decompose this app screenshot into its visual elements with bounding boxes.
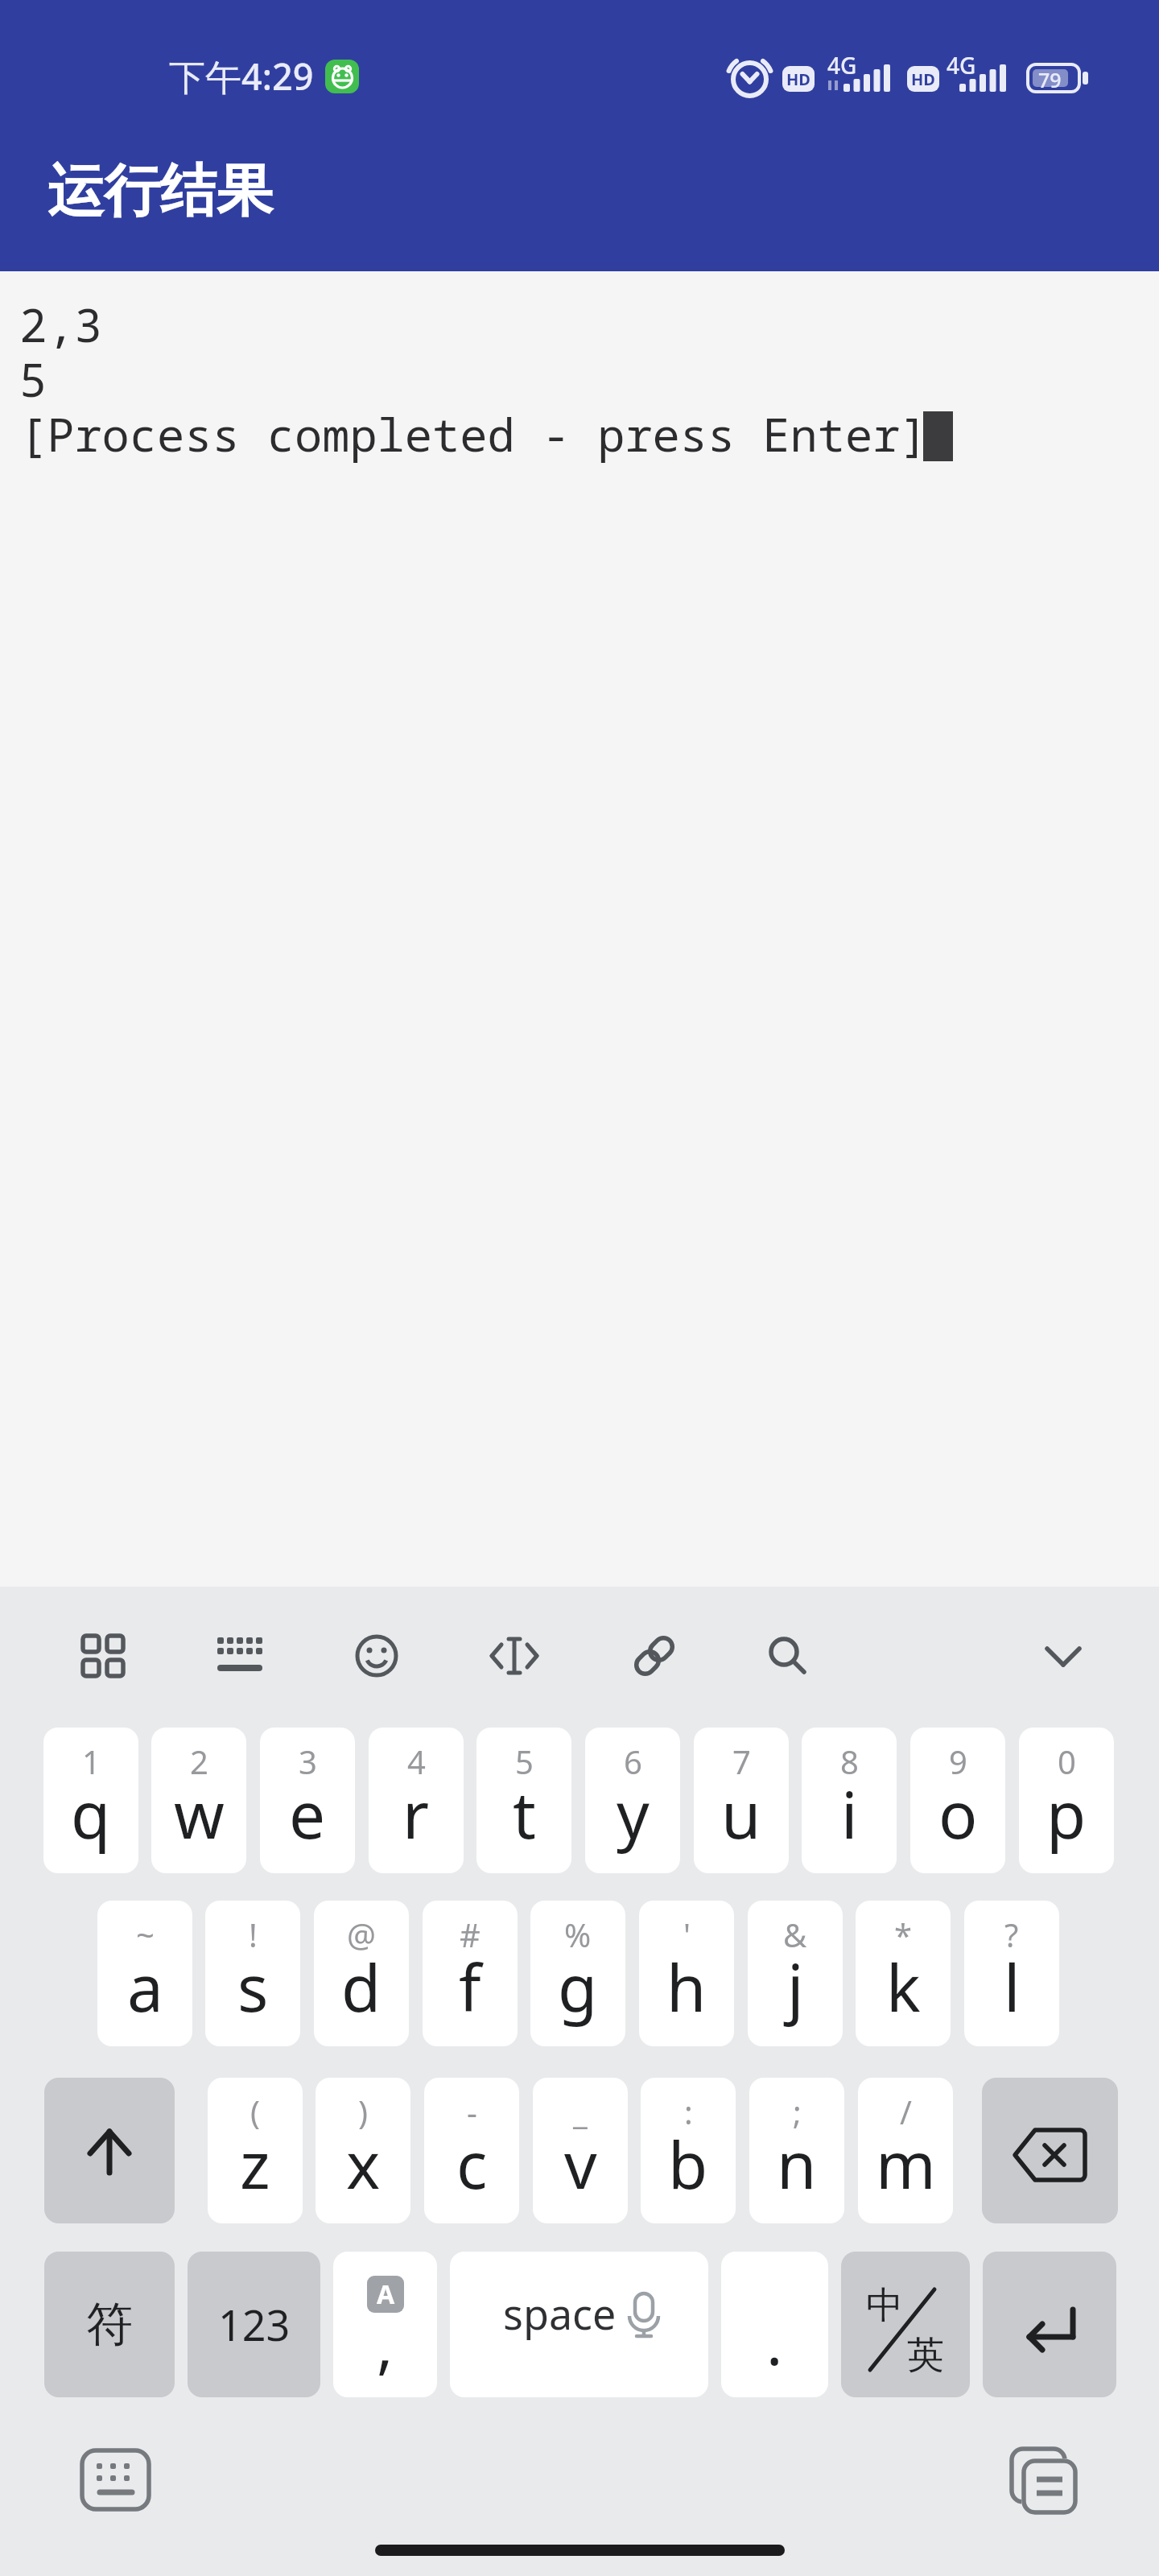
button[interactable]: 2 bbox=[151, 1728, 246, 1873]
staticText: 0 bbox=[1058, 1740, 1076, 1783]
staticText: & bbox=[783, 1913, 807, 1956]
staticText: 运行结果 bbox=[47, 156, 273, 227]
staticText: ( bbox=[250, 2090, 260, 2133]
staticText: space bbox=[503, 2285, 617, 2342]
staticText: o bbox=[938, 1769, 978, 1857]
button[interactable] bbox=[340, 1620, 413, 1692]
staticText: j bbox=[787, 1942, 804, 2030]
button[interactable]: _ bbox=[533, 2078, 628, 2223]
staticText: ! bbox=[249, 1913, 258, 1956]
staticText: / bbox=[900, 2090, 912, 2133]
staticText: 4 bbox=[407, 1740, 426, 1783]
staticText: h bbox=[666, 1942, 707, 2030]
staticText: f bbox=[459, 1942, 481, 2030]
button[interactable] bbox=[44, 2078, 175, 2223]
staticText: HD bbox=[786, 68, 810, 90]
button[interactable]: ( bbox=[208, 2078, 303, 2223]
staticText: t bbox=[513, 1769, 536, 1857]
staticText: 下午4:29 bbox=[169, 52, 314, 101]
staticText: l bbox=[1004, 1942, 1021, 2030]
staticText: 5 bbox=[515, 1740, 534, 1783]
staticText: HD bbox=[911, 68, 935, 90]
button[interactable]: # bbox=[423, 1901, 518, 2046]
button[interactable] bbox=[982, 2078, 1118, 2223]
staticText: a bbox=[127, 1942, 163, 2030]
staticText: 中 bbox=[866, 2282, 903, 2329]
staticText: 7 bbox=[732, 1740, 751, 1783]
button[interactable]: 9 bbox=[910, 1728, 1005, 1873]
button[interactable] bbox=[204, 1620, 276, 1692]
staticText: 8 bbox=[840, 1740, 859, 1783]
staticText: 符 bbox=[86, 2295, 133, 2354]
button[interactable] bbox=[67, 1620, 139, 1692]
staticText: 2 bbox=[190, 1740, 208, 1783]
button[interactable]: - bbox=[424, 2078, 519, 2223]
button[interactable]: ! bbox=[205, 1901, 300, 2046]
button[interactable] bbox=[1002, 2439, 1088, 2522]
staticText: q bbox=[71, 1769, 111, 1857]
staticText: g bbox=[558, 1942, 598, 2030]
button[interactable]: 8 bbox=[802, 1728, 897, 1873]
staticText: ? bbox=[1004, 1913, 1019, 1956]
staticText: , bbox=[377, 2302, 394, 2386]
button[interactable] bbox=[1027, 1620, 1099, 1692]
staticText: 6 bbox=[624, 1740, 642, 1783]
staticText: y bbox=[617, 1769, 650, 1857]
staticText: k bbox=[886, 1942, 921, 2030]
button[interactable]: / bbox=[858, 2078, 953, 2223]
button[interactable]: ~ bbox=[97, 1901, 192, 2046]
staticText: b bbox=[668, 2120, 708, 2207]
staticText: . bbox=[766, 2300, 783, 2384]
button[interactable]: ) bbox=[316, 2078, 410, 2223]
staticText: r bbox=[402, 1769, 430, 1857]
button[interactable]: 7 bbox=[694, 1728, 789, 1873]
button[interactable]: 5 bbox=[476, 1728, 571, 1873]
button[interactable]: ' bbox=[639, 1901, 734, 2046]
staticText: 123 bbox=[218, 2296, 291, 2353]
button[interactable]: space bbox=[450, 2252, 708, 2397]
button[interactable]: 6 bbox=[585, 1728, 680, 1873]
button[interactable]: 1 bbox=[43, 1728, 138, 1873]
button[interactable] bbox=[983, 2252, 1116, 2397]
button[interactable] bbox=[478, 1620, 551, 1692]
staticText: c bbox=[456, 2120, 488, 2207]
staticText: z bbox=[240, 2120, 270, 2207]
button[interactable]: ; bbox=[749, 2078, 844, 2223]
button[interactable]: 3 bbox=[260, 1728, 355, 1873]
button[interactable]: . bbox=[721, 2252, 828, 2397]
staticText: w bbox=[174, 1769, 225, 1857]
staticText: 9 bbox=[949, 1740, 967, 1783]
button[interactable]: : bbox=[641, 2078, 736, 2223]
staticText: @ bbox=[347, 1913, 376, 1956]
staticText: - bbox=[467, 2090, 477, 2133]
staticText: A bbox=[377, 2277, 395, 2312]
staticText: 2,3 5 [Process completed - press Enter] bbox=[19, 293, 928, 465]
button[interactable]: A bbox=[333, 2252, 437, 2397]
button[interactable]: 0 bbox=[1019, 1728, 1114, 1873]
staticText: s bbox=[237, 1942, 269, 2030]
button[interactable]: 123 bbox=[188, 2252, 320, 2397]
button[interactable]: 中 bbox=[841, 2252, 970, 2397]
button[interactable] bbox=[72, 2441, 159, 2519]
staticText: 3 bbox=[299, 1740, 317, 1783]
staticText: # bbox=[460, 1913, 481, 1956]
staticText: ) bbox=[358, 2090, 368, 2133]
staticText: d bbox=[341, 1942, 382, 2030]
staticText: : bbox=[684, 2090, 693, 2133]
button[interactable]: % bbox=[530, 1901, 625, 2046]
button[interactable] bbox=[618, 1620, 691, 1692]
staticText: * bbox=[894, 1913, 913, 1956]
button[interactable]: 4 bbox=[369, 1728, 464, 1873]
button[interactable]: * bbox=[856, 1901, 951, 2046]
staticText: p bbox=[1046, 1769, 1087, 1857]
staticText: e bbox=[289, 1769, 326, 1857]
button[interactable]: @ bbox=[314, 1901, 409, 2046]
staticText: 79 bbox=[1038, 66, 1062, 93]
staticText: 4G bbox=[827, 50, 857, 80]
staticText: i bbox=[841, 1769, 858, 1857]
button[interactable]: 符 bbox=[44, 2252, 175, 2397]
button[interactable] bbox=[752, 1620, 824, 1692]
staticText: 英 bbox=[907, 2332, 944, 2379]
button[interactable]: ? bbox=[964, 1901, 1059, 2046]
button[interactable]: & bbox=[748, 1901, 843, 2046]
